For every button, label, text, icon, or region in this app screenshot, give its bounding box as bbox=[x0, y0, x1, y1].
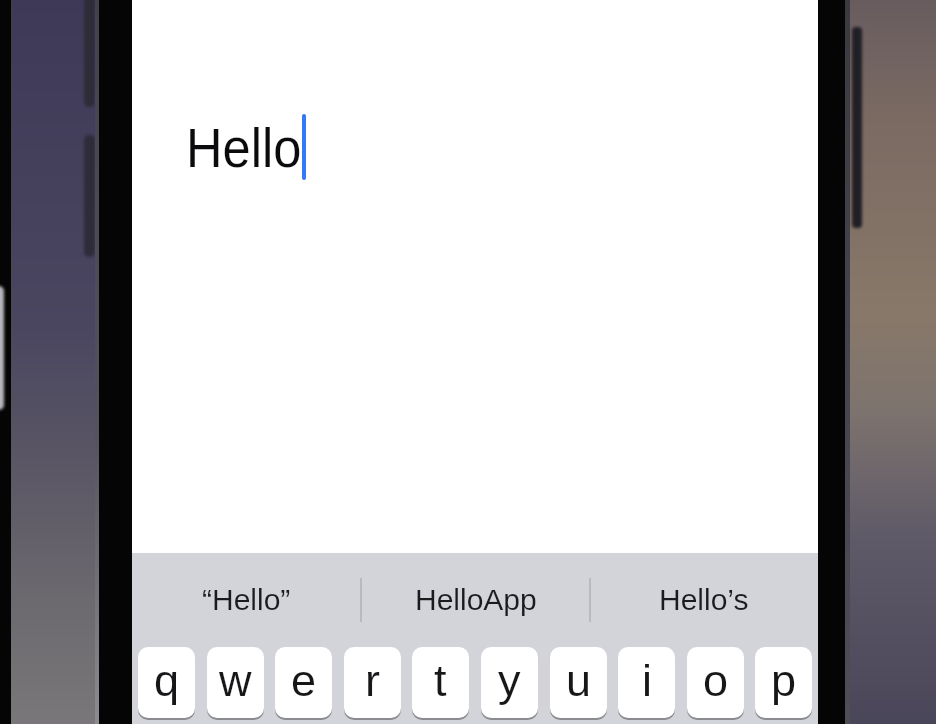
staticText: w bbox=[219, 655, 252, 705]
staticText: “Hello” bbox=[202, 583, 291, 617]
staticText: e bbox=[291, 655, 317, 705]
staticText: Hello bbox=[186, 117, 302, 178]
staticText: t bbox=[434, 655, 447, 705]
staticText: y bbox=[498, 655, 521, 705]
staticText: q bbox=[154, 655, 180, 705]
staticText: Hello’s bbox=[659, 583, 749, 617]
staticText: i bbox=[642, 655, 652, 705]
staticText: p bbox=[771, 655, 797, 705]
staticText: o bbox=[703, 655, 729, 705]
staticText: HelloApp bbox=[415, 583, 537, 617]
staticText: r bbox=[365, 655, 380, 705]
staticText: u bbox=[566, 655, 592, 705]
